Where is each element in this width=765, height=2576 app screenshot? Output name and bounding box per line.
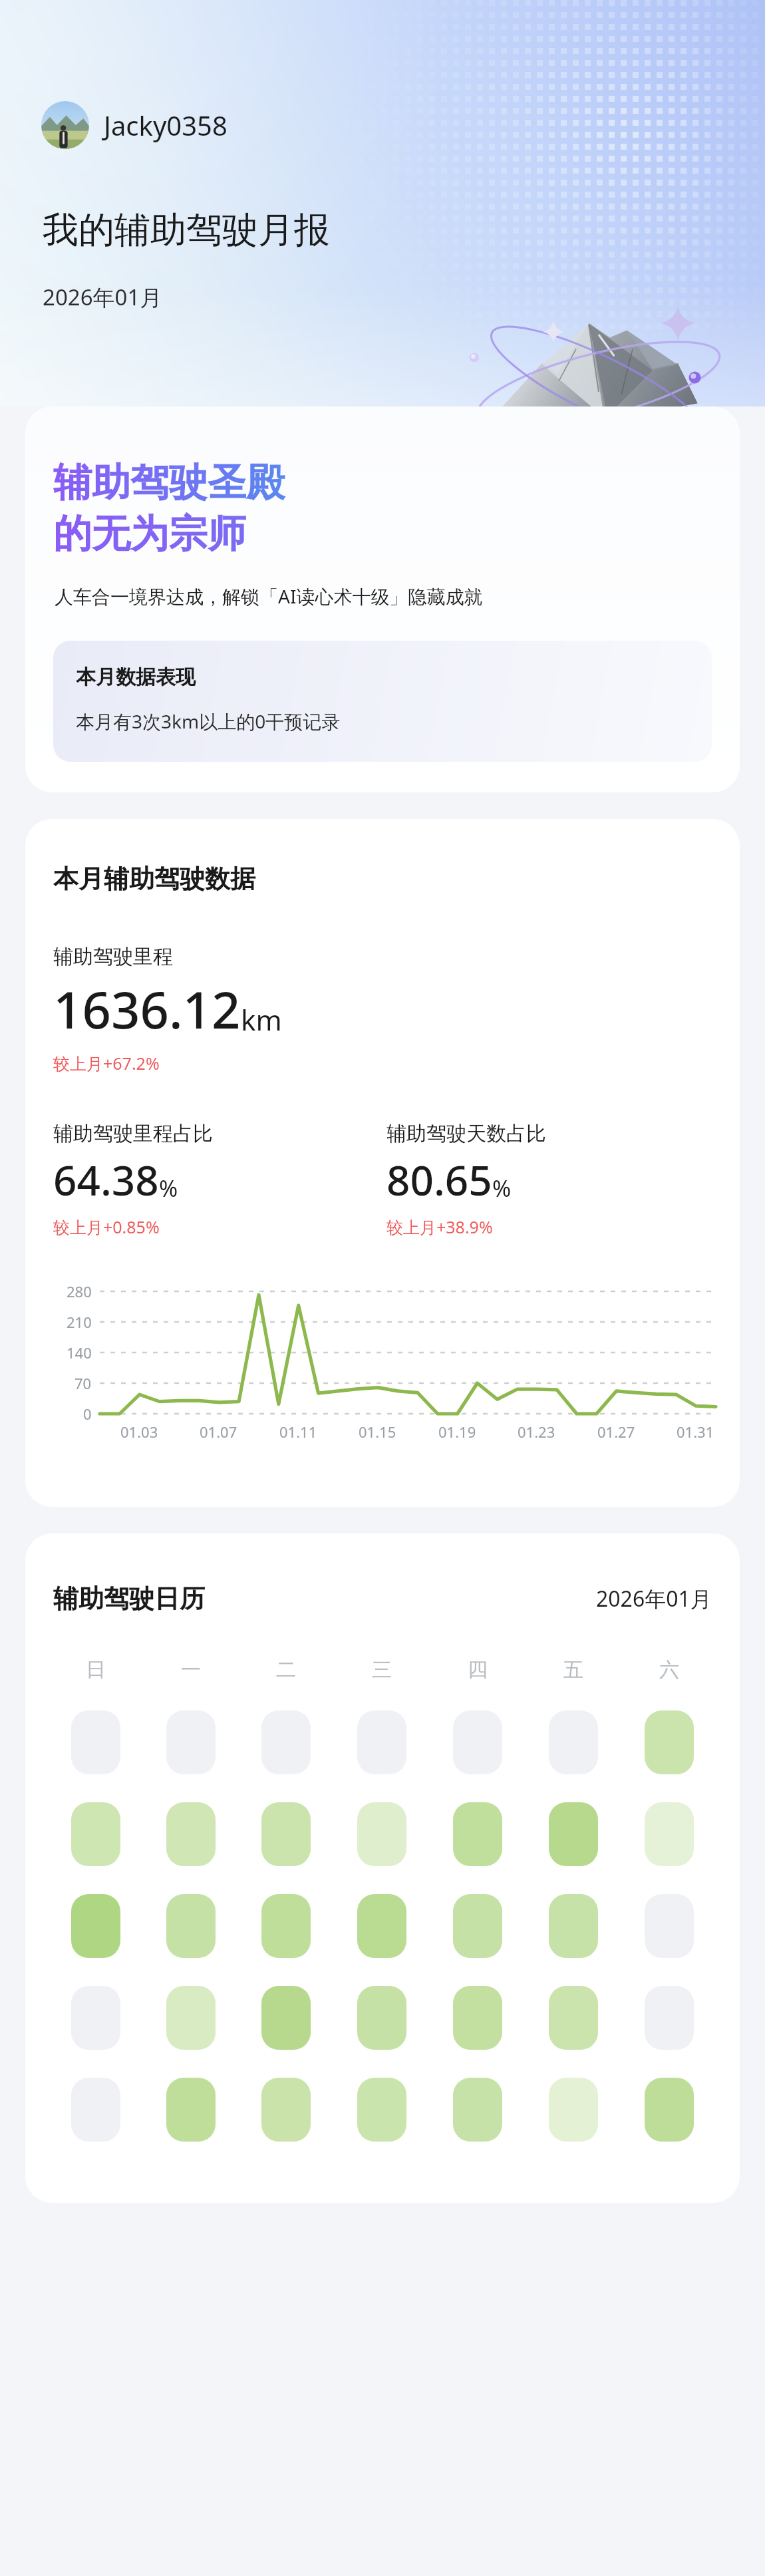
staticText: 辅助驾驶圣殿	[53, 458, 285, 507]
staticText: 2026年01月	[596, 1584, 712, 1613]
button[interactable]	[549, 1894, 598, 1958]
staticText: 较上月+38.9%	[386, 1215, 493, 1238]
staticText: %	[159, 1173, 178, 1204]
staticText: 1636.12	[53, 975, 241, 1044]
button[interactable]	[261, 2078, 311, 2142]
button[interactable]	[357, 1986, 406, 2050]
button[interactable]	[549, 1710, 598, 1774]
button[interactable]	[71, 1710, 120, 1774]
button[interactable]	[166, 2078, 216, 2142]
button[interactable]	[453, 1710, 502, 1774]
staticText: 日	[86, 1657, 106, 1683]
button[interactable]	[453, 1986, 502, 2050]
button[interactable]	[261, 1894, 311, 1958]
staticText: 辅助驾驶天数占比	[386, 1121, 546, 1146]
button[interactable]	[549, 1986, 598, 2050]
button[interactable]: 辅助驾驶圣殿	[25, 406, 740, 792]
button[interactable]: 本月辅助驾驶数据	[25, 819, 740, 1507]
button[interactable]: 辅助驾驶日历	[25, 1533, 740, 2203]
button[interactable]	[166, 1986, 216, 2050]
other: Achievement illustration	[429, 306, 712, 449]
staticText: 01.03	[120, 1422, 158, 1442]
button[interactable]	[261, 1986, 311, 2050]
staticText: 01.31	[677, 1422, 714, 1442]
staticText: 本月辅助驾驶数据	[53, 863, 255, 895]
button[interactable]	[357, 2078, 406, 2142]
staticText: 80.65	[386, 1152, 492, 1207]
staticText: 01.19	[438, 1422, 476, 1442]
button[interactable]: Jacky0358	[39, 98, 230, 152]
staticText: 01.23	[518, 1422, 555, 1442]
staticText: 辅助驾驶里程占比	[53, 1121, 213, 1146]
button[interactable]	[645, 1894, 694, 1958]
staticText: 本月有3次3km以上的0干预记录	[76, 709, 341, 734]
button[interactable]	[71, 1802, 120, 1866]
staticText: 的无为宗师	[53, 510, 246, 558]
button[interactable]	[71, 1894, 120, 1958]
button[interactable]	[453, 1894, 502, 1958]
staticText: 01.15	[359, 1422, 396, 1442]
button[interactable]	[71, 1986, 120, 2050]
button[interactable]	[645, 1710, 694, 1774]
button[interactable]	[645, 1802, 694, 1866]
staticText: 二	[276, 1657, 296, 1683]
staticText: 较上月+0.85%	[53, 1215, 160, 1238]
button[interactable]	[261, 1710, 311, 1774]
button[interactable]	[71, 2078, 120, 2142]
staticText: 64.38	[53, 1152, 159, 1207]
staticText: 01.27	[597, 1422, 635, 1442]
button[interactable]	[261, 1802, 311, 1866]
button[interactable]	[645, 1986, 694, 2050]
staticText: 01.11	[279, 1422, 317, 1442]
button[interactable]	[357, 1802, 406, 1866]
button[interactable]	[166, 1894, 216, 1958]
button[interactable]	[357, 1710, 406, 1774]
staticText: 本月数据表现	[76, 665, 196, 690]
button[interactable]	[166, 1802, 216, 1866]
staticText: 我的辅助驾驶月报	[43, 208, 330, 253]
staticText: 六	[659, 1657, 679, 1683]
button[interactable]: 本月数据表现	[53, 641, 712, 762]
button[interactable]	[645, 2078, 694, 2142]
staticText: km	[241, 1001, 282, 1039]
staticText: 01.07	[200, 1422, 237, 1442]
staticText: 五	[563, 1657, 583, 1683]
staticText: 280	[67, 1281, 92, 1301]
button[interactable]	[357, 1894, 406, 1958]
staticText: 一	[181, 1657, 201, 1683]
button[interactable]	[166, 1710, 216, 1774]
button[interactable]	[453, 2078, 502, 2142]
staticText: 人车合一境界达成，解锁「AI读心术十级」隐藏成就	[55, 583, 483, 609]
button[interactable]	[549, 1802, 598, 1866]
staticText: %	[492, 1173, 512, 1204]
staticText: 辅助驾驶里程	[53, 944, 173, 969]
staticText: 210	[67, 1312, 92, 1332]
staticText: 三	[372, 1657, 392, 1683]
button[interactable]	[453, 1802, 502, 1866]
staticText: Jacky0358	[104, 107, 228, 143]
staticText: 0	[83, 1404, 92, 1424]
staticText: 2026年01月	[43, 282, 162, 312]
staticText: 四	[468, 1657, 488, 1683]
staticText: 辅助驾驶日历	[53, 1583, 205, 1615]
staticText: 140	[67, 1343, 92, 1363]
button[interactable]	[549, 2078, 598, 2142]
staticText: 较上月+67.2%	[53, 1052, 160, 1074]
staticText: 70	[75, 1373, 92, 1393]
